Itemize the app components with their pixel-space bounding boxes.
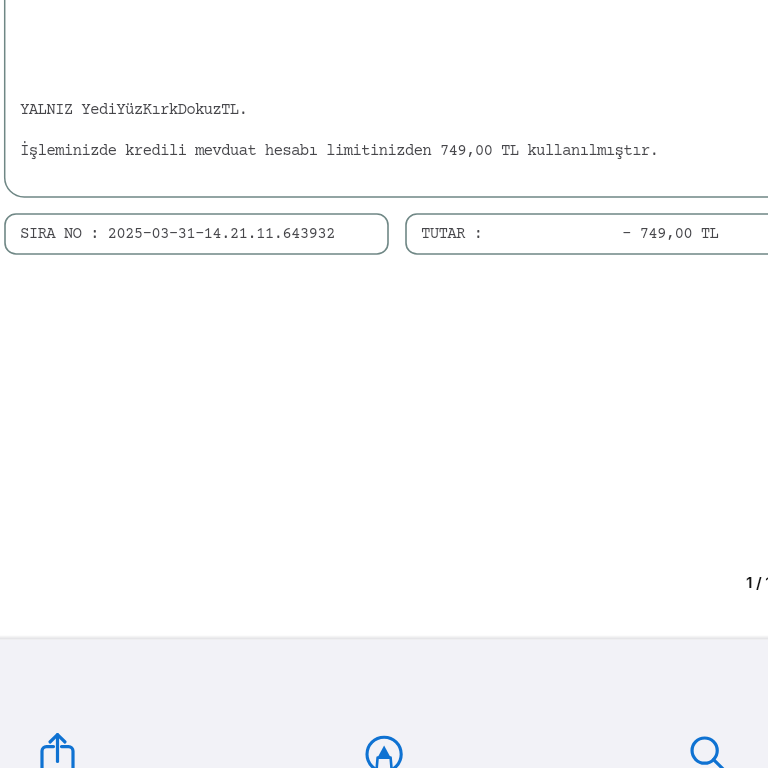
staticText: İşleminizde kredili mevduat hesabı limit… [20, 142, 659, 160]
button[interactable]: Search [674, 718, 740, 768]
button[interactable]: Markup [352, 718, 418, 768]
staticText: SIRA NO : 2025-03-31-14.21.11.643932 [20, 225, 335, 243]
button[interactable]: Share [25, 718, 91, 768]
staticText: YALNIZ YediYüzKırkDokuzTL. [20, 101, 248, 119]
staticText: 1 / 1 [746, 574, 768, 592]
staticText: TUTAR : - 749,00 TL [421, 225, 719, 243]
